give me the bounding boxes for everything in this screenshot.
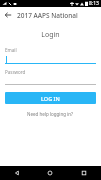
button[interactable] — [5, 54, 96, 64]
staticText: 8:13 — [89, 0, 99, 7]
button[interactable] — [5, 76, 96, 85]
staticText: Need help logging in? — [27, 111, 74, 117]
button[interactable]: Back — [0, 166, 33, 180]
button[interactable]: Need help logging in? — [5, 111, 96, 117]
button[interactable]: Home — [33, 166, 67, 180]
staticText: Password — [5, 69, 26, 75]
button[interactable]: LOG IN — [5, 92, 96, 104]
staticText: Email — [5, 47, 17, 53]
staticText: LOG IN — [41, 95, 60, 102]
staticText: Login — [5, 30, 96, 40]
button[interactable]: Recent apps — [67, 166, 101, 180]
button[interactable]: Back — [0, 7, 16, 23]
staticText: 2017 AAPS National Biotechn… — [17, 11, 97, 20]
